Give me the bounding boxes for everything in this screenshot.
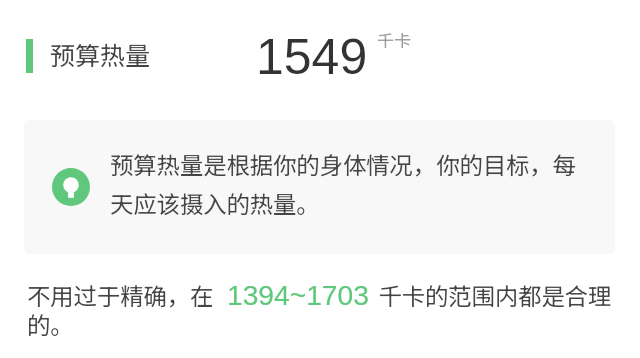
staticText: 预算热量: [50, 36, 151, 72]
staticText: 预算热量是根据你的身体情况，你的目标，每天应该摄入的热量。: [110, 147, 588, 220]
other: 提示: [52, 168, 90, 206]
staticText: 不用过于精确，在 1394~1703 千卡的范围内都是合理的。: [27, 278, 627, 341]
staticText: 千卡: [377, 27, 411, 52]
staticText: 1549: [256, 29, 368, 85]
button[interactable]: 提示: [24, 120, 615, 254]
